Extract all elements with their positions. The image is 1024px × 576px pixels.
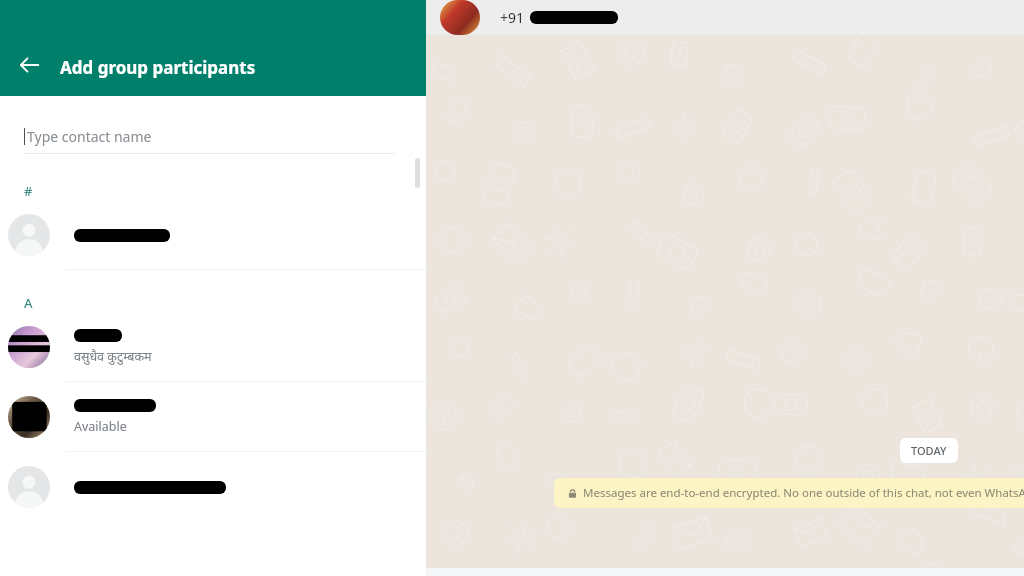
button[interactable]: [0, 200, 426, 270]
button[interactable]: Available: [0, 382, 426, 452]
button[interactable]: [0, 452, 426, 522]
staticText: Type contact name: [27, 127, 152, 146]
staticText: A: [24, 294, 33, 312]
staticText: Available: [74, 418, 127, 435]
button[interactable]: Back: [12, 48, 46, 82]
staticText: Messages are end-to-end encrypted. No on…: [583, 485, 1024, 501]
staticText: +91: [500, 8, 525, 27]
button[interactable]: Type contact name: [0, 96, 426, 162]
staticText: TODAY: [911, 443, 947, 458]
staticText: वसुधैव कुटुम्बकम: [74, 348, 152, 365]
button[interactable]: Contact profile photo: [440, 0, 480, 35]
button[interactable]: वसुधैव कुटुम्बकम: [0, 312, 426, 382]
staticText: #: [24, 182, 33, 200]
staticText: Add group participants: [60, 56, 256, 79]
